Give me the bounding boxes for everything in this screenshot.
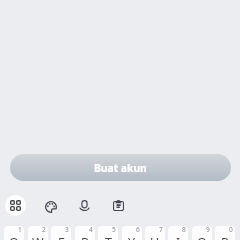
staticText: R <box>81 234 89 240</box>
button[interactable]: 1 <box>4 226 24 240</box>
staticText: Buat akun <box>94 161 147 175</box>
staticText: 1 <box>18 226 22 234</box>
staticText: 5 <box>112 226 116 234</box>
staticText: W <box>32 234 44 240</box>
staticText: 3 <box>65 226 69 234</box>
button[interactable]: Buat akun <box>10 154 231 181</box>
staticText: P <box>221 234 229 240</box>
button[interactable]: 9 <box>192 226 212 240</box>
staticText: O <box>197 234 207 240</box>
button[interactable]: Apps <box>5 195 26 216</box>
staticText: T <box>105 234 112 240</box>
button[interactable]: 3 <box>51 226 71 240</box>
button[interactable]: 5 <box>98 226 118 240</box>
button[interactable]: Stickers <box>40 196 61 217</box>
staticText: U <box>150 234 160 240</box>
staticText: Y <box>128 234 136 240</box>
button[interactable]: Voice input <box>74 195 95 216</box>
staticText: 0 <box>229 226 233 234</box>
staticText: 6 <box>136 226 140 234</box>
staticText: 4 <box>89 226 93 234</box>
staticText: E <box>58 234 65 240</box>
staticText: Q <box>9 234 19 240</box>
button[interactable]: 0 <box>215 226 235 240</box>
staticText: 9 <box>206 226 210 234</box>
button[interactable]: 2 <box>28 226 48 240</box>
button[interactable]: 7 <box>145 226 165 240</box>
button[interactable]: 4 <box>75 226 95 240</box>
button[interactable]: 8 <box>168 226 188 240</box>
button[interactable]: Clipboard <box>108 195 129 216</box>
staticText: I <box>176 234 181 240</box>
staticText: 7 <box>159 226 163 234</box>
button[interactable]: 6 <box>122 226 142 240</box>
staticText: 2 <box>42 226 46 234</box>
staticText: 8 <box>182 226 186 234</box>
